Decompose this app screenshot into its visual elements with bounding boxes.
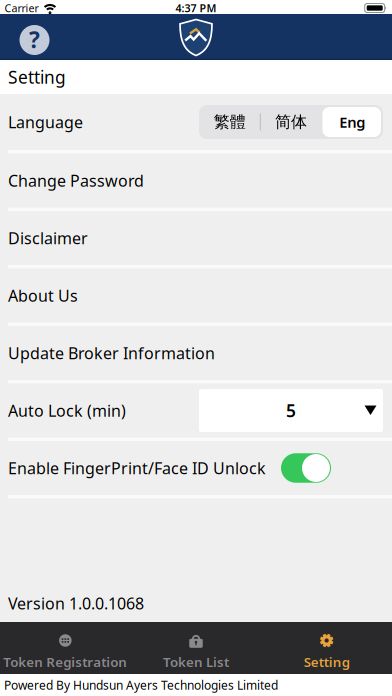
- button[interactable]: Token Registration: [0, 622, 131, 674]
- staticText: About Us: [8, 285, 78, 306]
- staticText: 4:37 PM: [175, 1, 216, 15]
- button[interactable]: Enable FingerPrint/Face ID Unlock: [281, 452, 331, 483]
- staticText: 繁體: [214, 112, 246, 132]
- staticText: Setting: [304, 653, 350, 671]
- staticText: Language: [8, 111, 83, 133]
- staticText: Setting: [8, 65, 66, 88]
- button[interactable]: 简体: [260, 105, 322, 139]
- staticText: 5: [286, 399, 296, 422]
- button[interactable]: Help: [19, 25, 49, 55]
- button[interactable]: Setting: [261, 622, 392, 674]
- button[interactable]: Change Password: [0, 153, 392, 207]
- button[interactable]: Disclaimer: [0, 211, 392, 265]
- staticText: 简体: [275, 112, 307, 132]
- staticText: Change Password: [8, 170, 144, 191]
- staticText: Auto Lock (min): [8, 400, 126, 421]
- button[interactable]: 繁體: [199, 105, 260, 139]
- button[interactable]: Update Broker Information: [0, 326, 392, 380]
- button[interactable]: Auto Lock minutes: [199, 389, 383, 432]
- staticText: Token Registration: [3, 653, 127, 671]
- button[interactable]: Token List: [131, 622, 261, 674]
- staticText: Token List: [163, 653, 229, 671]
- staticText: Version 1.0.0.1068: [8, 593, 144, 614]
- staticText: ?: [29, 24, 40, 54]
- button[interactable]: About Us: [0, 268, 392, 322]
- button[interactable]: Eng: [322, 105, 383, 139]
- staticText: Update Broker Information: [8, 342, 215, 364]
- staticText: Eng: [339, 112, 365, 132]
- staticText: Enable FingerPrint/Face ID Unlock: [8, 457, 266, 479]
- staticText: Powered By Hundsun Ayers Technologies Li…: [4, 677, 278, 693]
- staticText: Disclaimer: [8, 227, 88, 249]
- staticText: Carrier: [4, 1, 38, 15]
